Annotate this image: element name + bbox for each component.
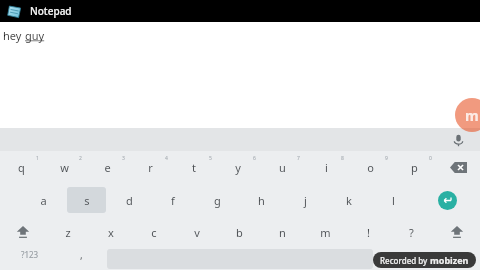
staticText: ?123 bbox=[21, 249, 39, 260]
staticText: c bbox=[151, 225, 157, 240]
staticText: l bbox=[392, 193, 395, 208]
staticText: x bbox=[108, 225, 114, 240]
button[interactable]: w bbox=[45, 154, 84, 181]
staticText: . bbox=[397, 248, 400, 262]
staticText: m bbox=[465, 106, 479, 125]
button[interactable]: p bbox=[394, 154, 434, 181]
button[interactable]: g bbox=[197, 187, 237, 213]
staticText: 0 bbox=[429, 155, 432, 162]
staticText: , bbox=[80, 248, 83, 262]
staticText: 4 bbox=[165, 155, 168, 162]
button[interactable]: ! bbox=[349, 219, 388, 245]
staticText: 2 bbox=[79, 155, 82, 162]
button[interactable]: q bbox=[2, 154, 41, 181]
staticText: ! bbox=[367, 225, 370, 240]
button[interactable]: f bbox=[153, 187, 193, 213]
button[interactable]: z bbox=[48, 219, 87, 245]
staticText: i bbox=[325, 160, 328, 175]
staticText: g bbox=[214, 193, 221, 208]
staticText: a bbox=[40, 193, 47, 208]
staticText: d bbox=[126, 193, 133, 208]
staticText: 6 bbox=[253, 155, 256, 162]
staticText: h bbox=[258, 193, 265, 208]
staticText: k bbox=[346, 193, 352, 208]
button[interactable]: y bbox=[218, 154, 258, 181]
staticText: u bbox=[279, 160, 286, 175]
staticText: 7 bbox=[297, 155, 300, 162]
button[interactable]: m bbox=[306, 219, 345, 245]
button[interactable]: c bbox=[134, 219, 173, 245]
staticText: 8 bbox=[341, 155, 344, 162]
staticText: v bbox=[194, 225, 200, 240]
button[interactable]: ? bbox=[392, 219, 431, 245]
button[interactable]: Backspace bbox=[436, 151, 480, 184]
button[interactable]: Notepad bbox=[0, 0, 480, 22]
staticText: Notepad bbox=[30, 4, 72, 18]
button[interactable]: Enter bbox=[415, 184, 480, 216]
staticText: 3 bbox=[122, 155, 125, 162]
staticText: n bbox=[279, 225, 286, 240]
button[interactable]: v bbox=[177, 219, 216, 245]
staticText: y bbox=[235, 160, 241, 175]
button[interactable]: Shift bbox=[0, 216, 46, 248]
button[interactable]: Mobizen recorder bbox=[455, 98, 480, 132]
staticText: q bbox=[18, 160, 25, 175]
button[interactable]: e bbox=[88, 154, 127, 181]
button[interactable]: b bbox=[220, 219, 259, 245]
button[interactable]: hey bbox=[0, 22, 480, 270]
button[interactable]: t bbox=[174, 154, 214, 181]
button[interactable]: a bbox=[24, 187, 63, 213]
button[interactable]: k bbox=[329, 187, 369, 213]
staticText: r bbox=[148, 160, 153, 175]
button[interactable]: j bbox=[285, 187, 325, 213]
button[interactable]: l bbox=[373, 187, 413, 213]
staticText: mobizen bbox=[430, 254, 469, 266]
staticText: hey bbox=[3, 28, 25, 43]
button[interactable]: , bbox=[59, 248, 104, 270]
staticText: z bbox=[65, 225, 71, 240]
staticText: s bbox=[84, 193, 90, 208]
staticText: j bbox=[304, 193, 307, 208]
staticText: ? bbox=[409, 225, 414, 240]
button[interactable]: o bbox=[350, 154, 390, 181]
staticText: f bbox=[171, 193, 175, 208]
staticText: p bbox=[411, 160, 418, 175]
staticText: o bbox=[367, 160, 374, 175]
button[interactable]: d bbox=[110, 187, 149, 213]
staticText: 5 bbox=[209, 155, 212, 162]
button[interactable]: s bbox=[67, 187, 106, 213]
button[interactable]: . bbox=[376, 248, 421, 270]
staticText: 9 bbox=[385, 155, 388, 162]
staticText: e bbox=[104, 160, 111, 175]
button[interactable]: ?123 bbox=[0, 248, 59, 270]
staticText: t bbox=[192, 160, 196, 175]
staticText: m bbox=[320, 225, 331, 240]
button[interactable]: i bbox=[306, 154, 346, 181]
button[interactable]: Emoji bbox=[421, 248, 480, 270]
button[interactable]: Voice input bbox=[448, 130, 468, 150]
button[interactable]: n bbox=[263, 219, 302, 245]
button[interactable]: x bbox=[91, 219, 130, 245]
staticText: b bbox=[236, 225, 243, 240]
button[interactable]: r bbox=[131, 154, 170, 181]
button[interactable]: Shift bbox=[433, 216, 480, 248]
staticText: w bbox=[60, 160, 69, 175]
staticText: 1 bbox=[36, 155, 39, 162]
button[interactable]: h bbox=[241, 187, 281, 213]
staticText: guy bbox=[25, 28, 45, 43]
button[interactable]: u bbox=[262, 154, 302, 181]
staticText: Recorded by bbox=[380, 255, 430, 266]
